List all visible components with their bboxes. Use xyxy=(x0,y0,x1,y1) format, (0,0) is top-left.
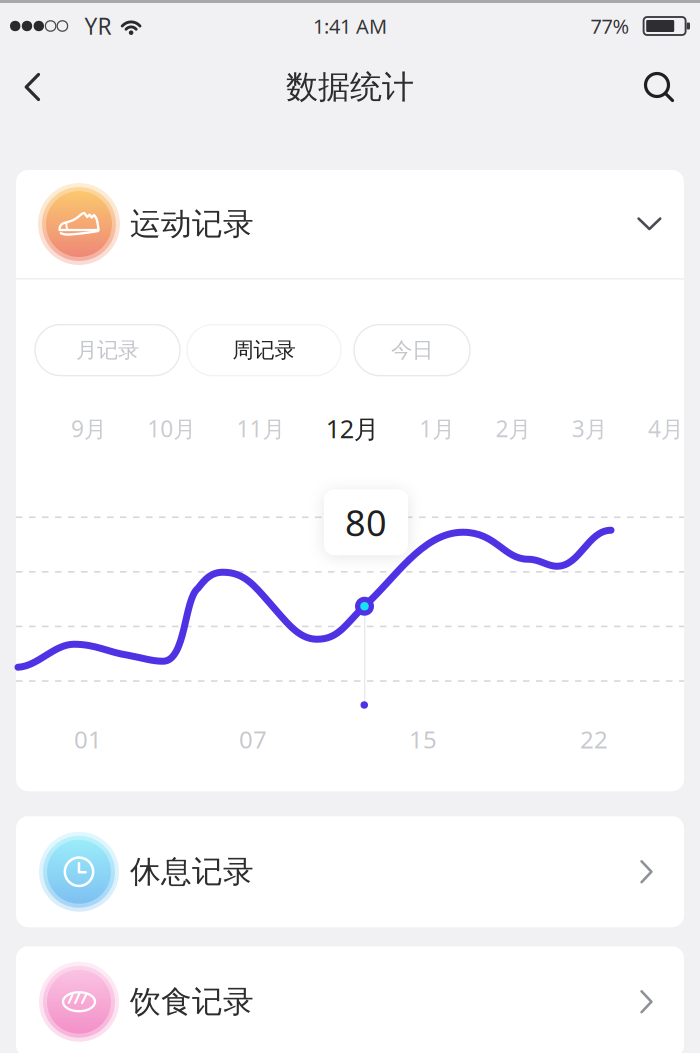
staticText: 77% xyxy=(591,13,630,39)
staticText: 9月 xyxy=(71,413,107,443)
staticText: 周记录 xyxy=(232,337,295,363)
staticText: 月记录 xyxy=(76,337,139,363)
staticText: 今日 xyxy=(391,337,433,363)
staticText: YR xyxy=(85,11,112,41)
staticText: 运动记录 xyxy=(130,205,254,243)
staticText: 01 xyxy=(74,723,102,755)
staticText: 15 xyxy=(409,723,437,755)
staticText: 2月 xyxy=(495,413,531,443)
button[interactable]: Back xyxy=(0,56,63,117)
button[interactable]: Search xyxy=(622,56,700,118)
staticText: 12月 xyxy=(326,412,379,445)
staticText: 4月 xyxy=(648,413,684,443)
staticText: 3月 xyxy=(572,413,608,443)
button[interactable]: 周记录 xyxy=(187,325,341,376)
button[interactable]: 11月 xyxy=(237,413,286,443)
button[interactable]: 1月 xyxy=(419,413,455,443)
button[interactable]: 3月 xyxy=(572,413,608,443)
button[interactable]: 运动记录 xyxy=(16,170,684,278)
staticText: 07 xyxy=(239,723,267,755)
staticText: 1月 xyxy=(419,413,455,443)
button[interactable]: 月记录 xyxy=(35,325,180,376)
staticText: 80 xyxy=(345,498,387,546)
button[interactable]: 饮食记录 xyxy=(16,946,684,1053)
button[interactable]: 今日 xyxy=(354,325,470,376)
staticText: 饮食记录 xyxy=(130,983,254,1021)
staticText: 11月 xyxy=(237,413,286,443)
button[interactable]: 2月 xyxy=(495,413,531,443)
staticText: 休息记录 xyxy=(130,853,254,891)
button[interactable]: 10月 xyxy=(147,413,196,443)
button[interactable]: 休息记录 xyxy=(16,816,684,927)
staticText: 22 xyxy=(580,723,608,755)
staticText: 数据统计 xyxy=(286,67,414,107)
button[interactable]: 4月 xyxy=(648,413,684,443)
staticText: 1:41 AM xyxy=(313,13,387,39)
staticText: 10月 xyxy=(147,413,196,443)
button[interactable]: 12月 xyxy=(326,412,379,445)
button[interactable]: 9月 xyxy=(71,413,107,443)
